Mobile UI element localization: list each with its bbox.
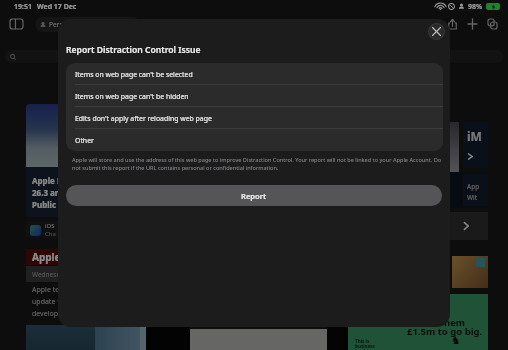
staticText: ♞ [451, 334, 461, 347]
button[interactable]: Share [444, 15, 461, 33]
button[interactable]: Other [66, 129, 443, 151]
staticText: £1.5m to go big. [407, 325, 483, 338]
staticText: Personal [49, 20, 77, 29]
button[interactable]: Personal [40, 17, 140, 32]
button[interactable]: Items on web page can't be selected [66, 63, 443, 85]
staticText: Wednesd [32, 270, 61, 279]
staticText: iM [467, 128, 482, 144]
staticText: Cha [45, 230, 56, 238]
staticText: Edits don't apply after reloading web pa… [75, 114, 212, 123]
staticText: Items on web page can't be selected [75, 70, 193, 79]
staticText: Wed 17 Dec [37, 2, 77, 12]
button[interactable]: Report [66, 185, 442, 206]
staticText: update f [32, 297, 60, 307]
staticText: Report [241, 191, 267, 201]
button[interactable]: Edits don't apply after reloading web pa… [66, 107, 443, 129]
button[interactable]: Close [428, 23, 445, 40]
staticText: This is business banking [355, 338, 375, 350]
staticText: develope [32, 309, 62, 319]
staticText: Other [75, 136, 94, 145]
staticText: iOS [45, 222, 55, 230]
staticText: Apple R [32, 175, 63, 186]
staticText: 98% [468, 2, 483, 12]
staticText: Public B [32, 199, 64, 210]
button[interactable]: Items on web page can't be hidden [66, 85, 443, 107]
staticText: Apple will store and use the address of … [72, 156, 442, 172]
staticText: Apple [32, 250, 61, 264]
staticText: App [467, 182, 480, 191]
button[interactable]: Sidebar [6, 14, 26, 34]
staticText: Apple to [32, 285, 60, 295]
staticText: 19:51 [14, 2, 32, 12]
staticText: Report Distraction Control Issue [66, 44, 201, 56]
button[interactable] [5, 50, 503, 63]
staticText: 26.3 an [32, 187, 61, 198]
button[interactable]: Tabs [484, 15, 501, 33]
staticText: Items on web page can't be hidden [75, 92, 189, 101]
staticText: Wit [467, 193, 478, 202]
staticText: hem [444, 316, 466, 329]
button[interactable]: New Tab [464, 15, 481, 33]
